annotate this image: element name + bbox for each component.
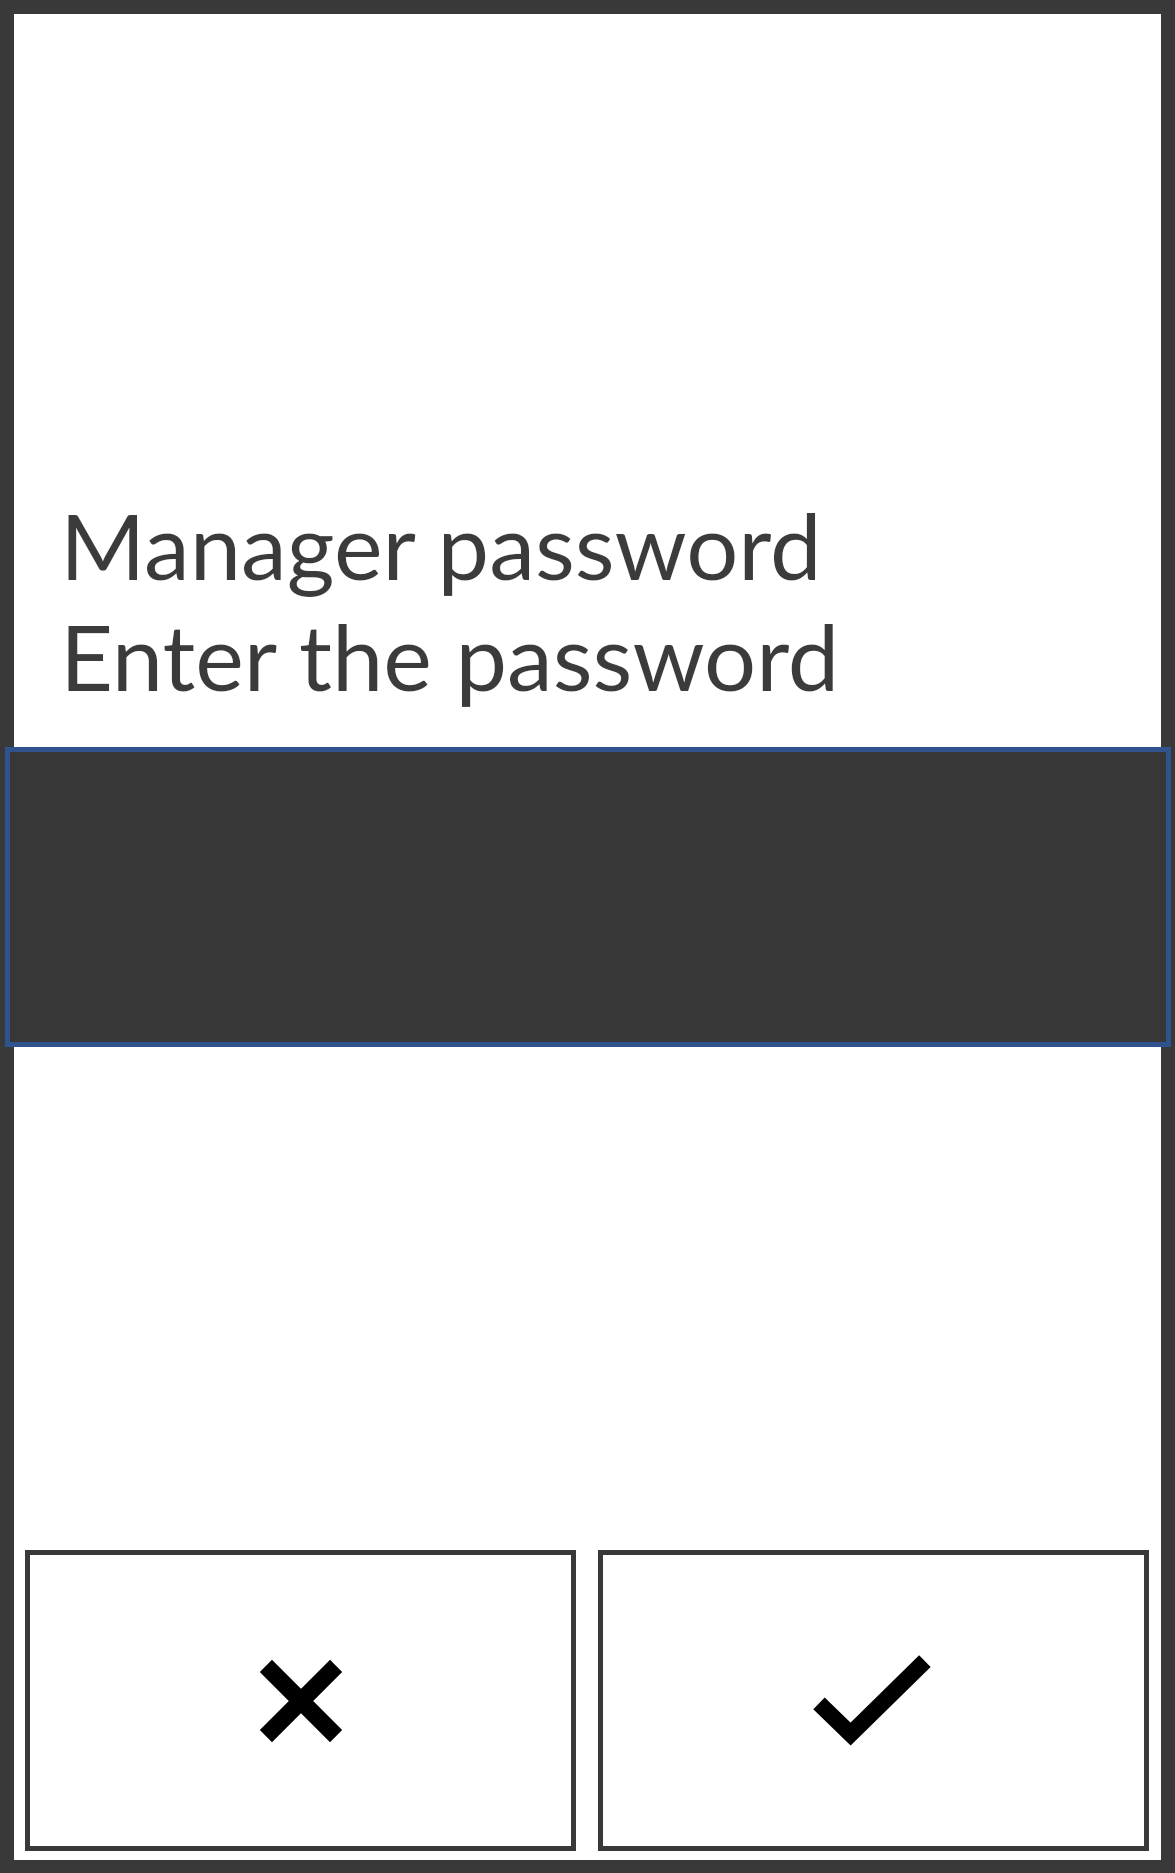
button[interactable]: Cancel	[25, 1550, 576, 1851]
staticText: Enter the password	[60, 600, 840, 710]
staticText: Manager password	[60, 489, 822, 599]
button[interactable]: Confirm	[598, 1550, 1149, 1851]
button[interactable]: Password entry field	[5, 747, 1171, 1047]
